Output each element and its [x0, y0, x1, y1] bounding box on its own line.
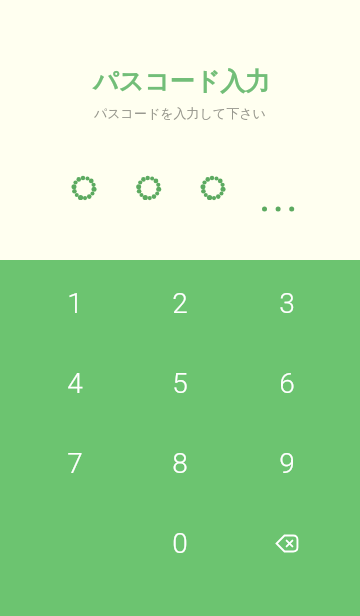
button[interactable]: 6 [240, 343, 360, 423]
button[interactable]: Delete last digit [240, 503, 360, 583]
staticText: パスコードを入力して下さい [94, 105, 266, 121]
button[interactable]: 8 [120, 423, 240, 503]
staticText: 3 [279, 287, 295, 320]
staticText: 2 [172, 287, 188, 320]
staticText: 6 [279, 367, 295, 400]
staticText: 7 [67, 447, 83, 480]
button[interactable]: 5 [120, 343, 240, 423]
button[interactable]: 7 [0, 423, 120, 503]
staticText: 9 [279, 447, 295, 480]
staticText: パスコード入力 [93, 66, 271, 97]
button[interactable]: 9 [240, 423, 360, 503]
button[interactable]: 1 [0, 263, 120, 343]
staticText: 4 [67, 367, 83, 400]
button[interactable]: 2 [120, 263, 240, 343]
staticText: 8 [172, 447, 188, 480]
button[interactable]: 4 [0, 343, 120, 423]
staticText: 0 [172, 527, 188, 560]
button[interactable]: 3 [240, 263, 360, 343]
staticText: 5 [172, 367, 188, 400]
button[interactable]: 0 [120, 503, 240, 583]
staticText: 1 [67, 287, 83, 320]
